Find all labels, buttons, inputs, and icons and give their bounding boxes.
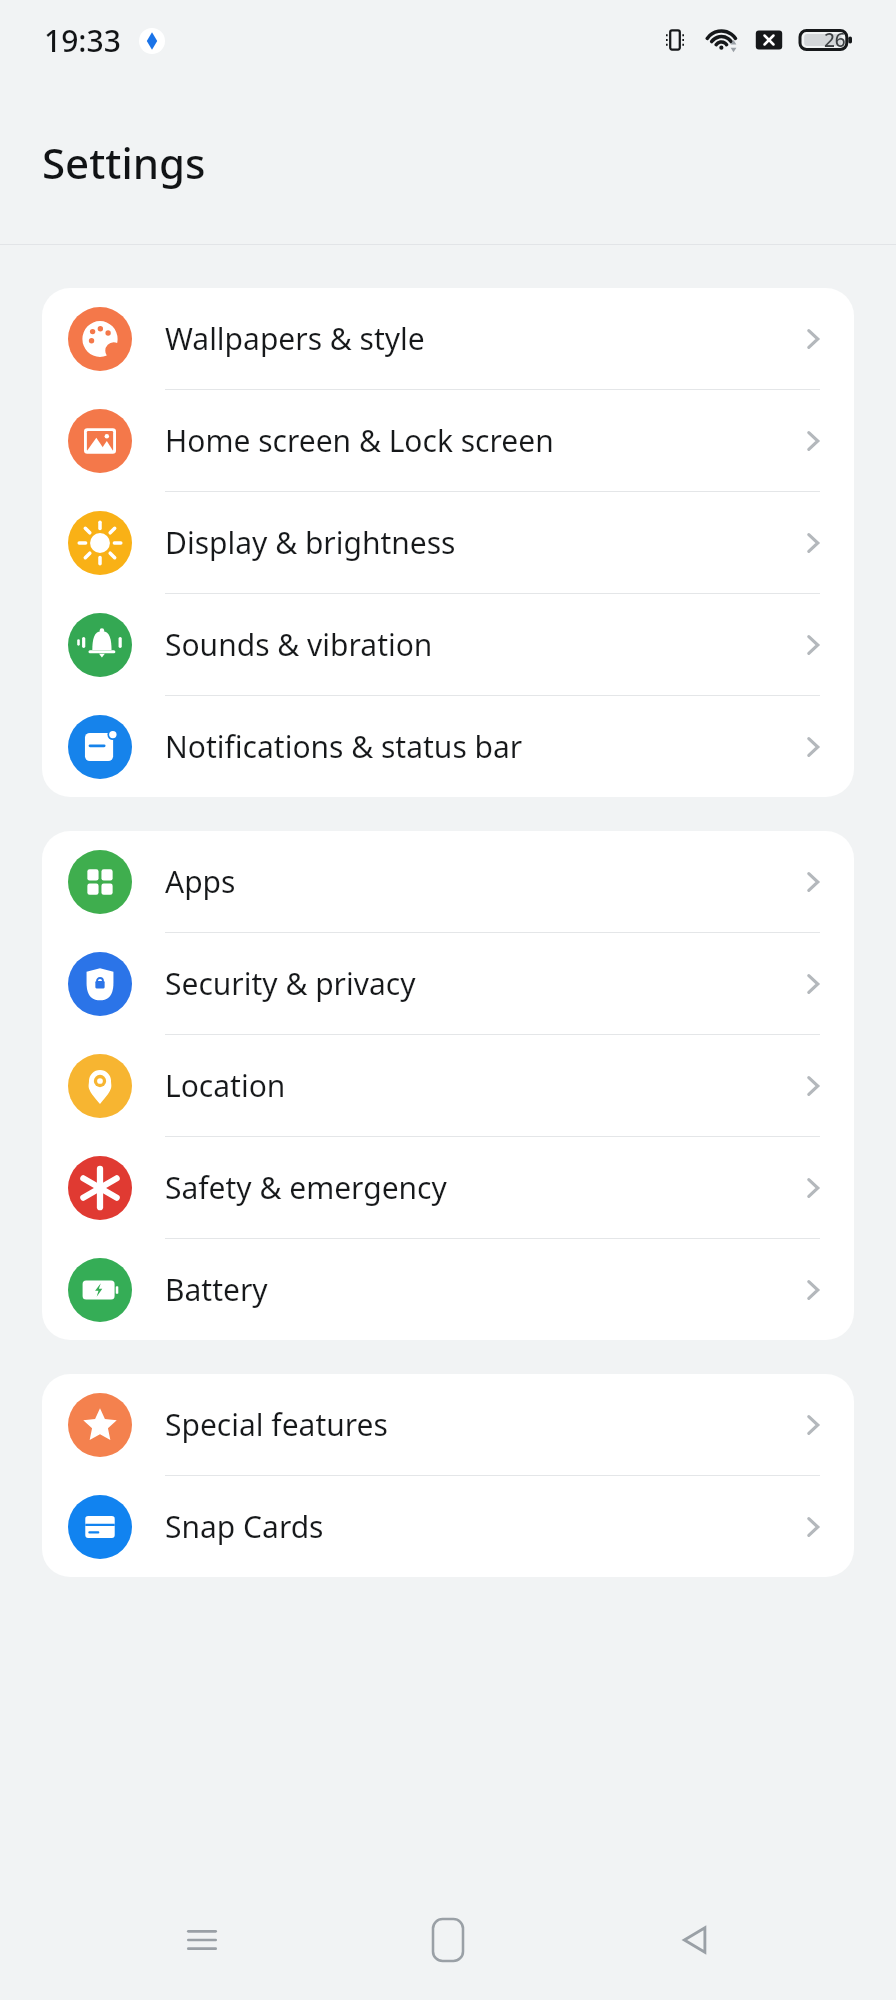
button[interactable]: Display & brightness [42, 492, 854, 594]
staticText: 26 [824, 27, 846, 53]
staticText: Special features [165, 1404, 388, 1445]
staticText: Sounds & vibration [165, 624, 433, 665]
staticText: 19:33 [44, 20, 121, 61]
button[interactable]: Recent apps [157, 1895, 247, 1985]
button[interactable]: Sounds & vibration [42, 594, 854, 696]
button[interactable]: Snap Cards [42, 1476, 854, 1577]
staticText: Wallpapers & style [165, 318, 425, 359]
staticText: Location [165, 1065, 286, 1106]
button[interactable]: Home [403, 1895, 493, 1985]
button[interactable]: Notifications & status bar [42, 696, 854, 797]
staticText: Apps [165, 861, 236, 902]
staticText: Safety & emergency [165, 1167, 447, 1208]
button[interactable]: Battery [42, 1239, 854, 1340]
staticText: Security & privacy [165, 963, 416, 1004]
staticText: Notifications & status bar [165, 726, 523, 767]
staticText: Display & brightness [165, 522, 456, 563]
button[interactable]: Apps [42, 831, 854, 933]
button[interactable]: Special features [42, 1374, 854, 1476]
button[interactable]: Home screen & Lock screen [42, 390, 854, 492]
button[interactable]: Security & privacy [42, 933, 854, 1035]
staticText: Settings [42, 134, 206, 191]
button[interactable]: Location [42, 1035, 854, 1137]
button[interactable]: Wallpapers & style [42, 288, 854, 390]
staticText: Snap Cards [165, 1506, 324, 1547]
button[interactable]: Back [650, 1895, 740, 1985]
staticText: Battery [165, 1269, 268, 1310]
button[interactable]: Safety & emergency [42, 1137, 854, 1239]
staticText: Home screen & Lock screen [165, 420, 554, 461]
